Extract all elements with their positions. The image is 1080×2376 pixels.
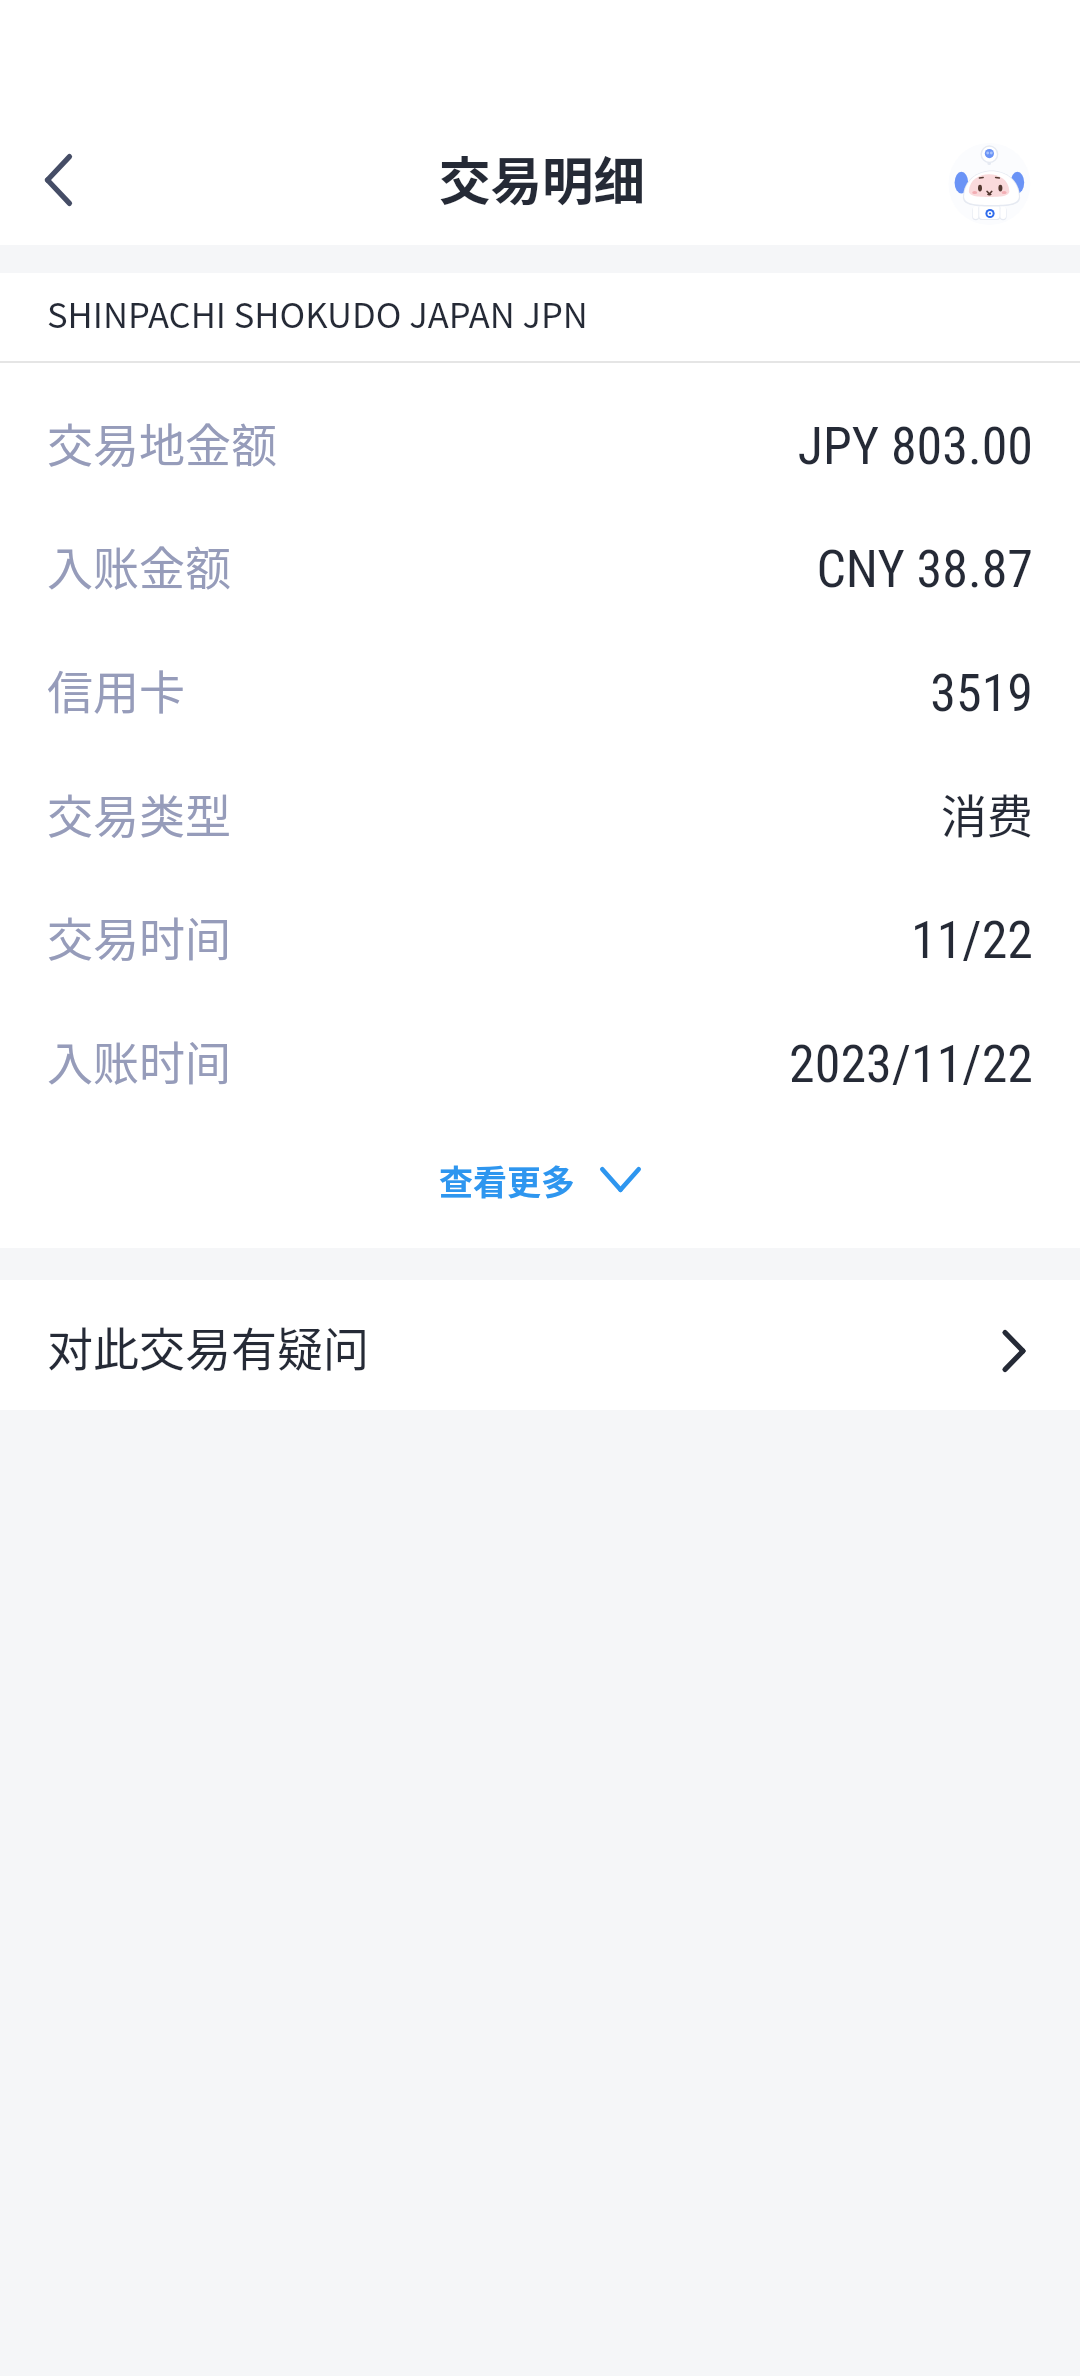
button[interactable]: Online assistant (940, 138, 1038, 236)
staticText: 2023/11/22 (231, 1034, 1033, 1095)
staticText: 交易类型 (47, 780, 231, 847)
button[interactable]: 信用卡 (0, 627, 1080, 751)
button[interactable]: 入账时间 (0, 998, 1080, 1122)
staticText: 消费 (231, 780, 1033, 847)
staticText: 3519 (185, 663, 1033, 724)
staticText: 交易时间 (47, 903, 231, 970)
staticText: CNY 38.87 (231, 539, 1033, 600)
staticText: SHINPACHI SHOKUDO JAPAN JPN (47, 288, 588, 338)
button[interactable]: Back (14, 141, 103, 219)
staticText: 查看更多 (439, 1156, 575, 1205)
button[interactable]: 查看更多 (0, 1122, 1080, 1248)
staticText: 入账时间 (47, 1027, 231, 1094)
staticText: 入账金额 (47, 532, 231, 599)
staticText: JPY 803.00 (277, 416, 1033, 477)
button[interactable]: 入账金额 (0, 504, 1080, 627)
staticText: 交易明细 (439, 140, 646, 215)
staticText: 信用卡 (47, 656, 185, 723)
button[interactable]: 交易类型 (0, 751, 1080, 875)
button[interactable]: 交易地金额 (0, 380, 1080, 504)
staticText: 11/22 (231, 910, 1033, 971)
staticText: 交易地金额 (47, 409, 277, 476)
staticText: 对此交易有疑问 (47, 1313, 369, 1380)
button[interactable]: 交易时间 (0, 875, 1080, 998)
button[interactable]: 对此交易有疑问 (0, 1280, 1080, 1410)
